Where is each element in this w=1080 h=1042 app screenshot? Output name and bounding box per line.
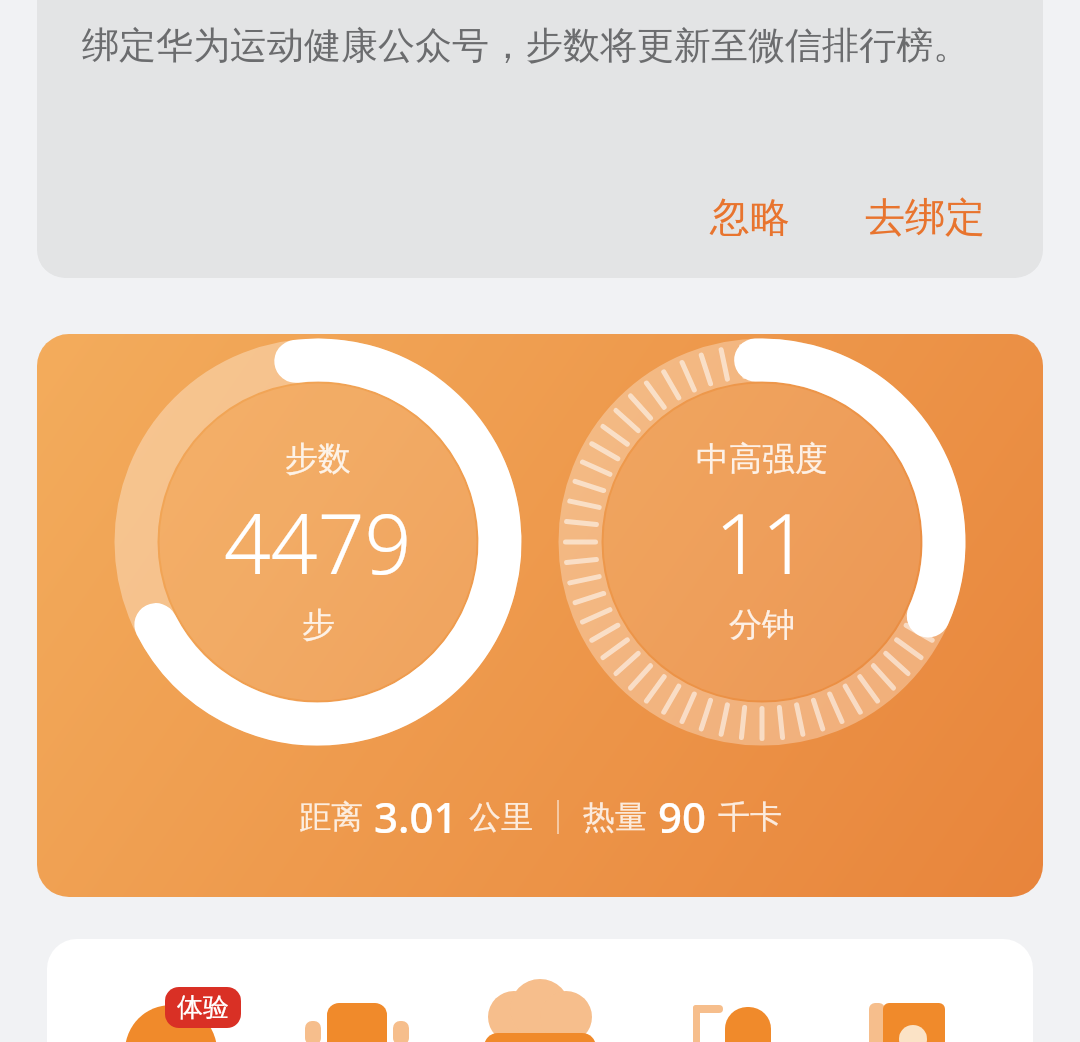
button[interactable]: Health (850, 977, 960, 1042)
staticText: 中高强度 (696, 438, 828, 480)
staticText: 步 (302, 604, 335, 646)
staticText: 热量 (583, 797, 647, 837)
staticText: 11 (715, 486, 809, 598)
staticText: 体验 (177, 991, 229, 1024)
button[interactable]: 去绑定 (855, 186, 995, 248)
staticText: 90 (658, 788, 707, 845)
button[interactable]: Diet (485, 977, 595, 1042)
staticText: 公里 (469, 797, 533, 837)
staticText: 去绑定 (865, 192, 985, 242)
staticText: 步数 (285, 438, 351, 480)
staticText: 绑定华为运动健康公众号，步数将更新至微信排行榜。 (82, 22, 1003, 69)
button[interactable]: Weight (302, 977, 412, 1042)
button[interactable]: 步数 (37, 334, 1043, 897)
button[interactable]: Sleep music (668, 977, 778, 1042)
staticText: 4479 (224, 486, 412, 598)
staticText: 分钟 (729, 604, 795, 646)
staticText: 距离 (299, 797, 363, 837)
staticText: 3.01 (374, 788, 458, 845)
button[interactable]: Pressure (120, 977, 230, 1042)
staticText: 千卡 (718, 797, 782, 837)
staticText: 忽略 (710, 192, 790, 242)
button[interactable]: 忽略 (700, 186, 800, 248)
